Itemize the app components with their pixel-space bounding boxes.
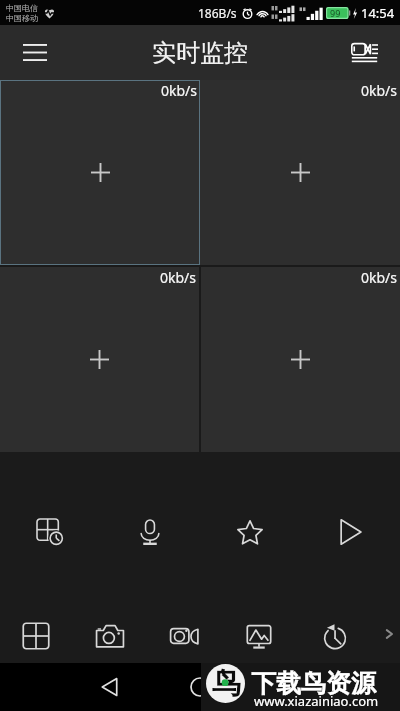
button[interactable]: Video channel <box>0 267 199 452</box>
button[interactable]: Video channel <box>200 80 400 265</box>
button[interactable]: Play <box>324 506 376 558</box>
staticText: 中国移动 <box>6 13 38 23</box>
staticText: 0kb/s <box>161 81 198 100</box>
staticText: 0kb/s <box>361 268 398 287</box>
button[interactable]: Back <box>100 677 119 697</box>
button[interactable]: History <box>310 612 358 660</box>
staticText: 14:54 <box>361 4 395 22</box>
staticText: 0kb/s <box>160 268 197 287</box>
staticText: 186B/s <box>198 5 237 21</box>
staticText: www.xiazainiao.com <box>254 692 379 710</box>
button[interactable]: Video channel <box>0 80 200 265</box>
button[interactable]: Split screen <box>12 612 60 660</box>
staticText: 实时监控 <box>152 38 248 68</box>
staticText: 下载鸟资源 <box>251 668 376 699</box>
button[interactable]: Favorite <box>224 506 276 558</box>
button[interactable]: Snapshot <box>86 612 134 660</box>
button[interactable]: Menu <box>0 25 70 80</box>
button[interactable]: Video channel <box>201 267 400 452</box>
button[interactable]: Microphone <box>124 506 176 558</box>
staticText: 0kb/s <box>361 81 398 100</box>
button[interactable]: Playback <box>24 506 76 558</box>
button[interactable]: Device list <box>328 25 400 80</box>
button[interactable]: Record <box>161 612 209 660</box>
staticText: 鸟 <box>212 665 241 702</box>
button[interactable]: Image <box>235 612 283 660</box>
button[interactable]: Home <box>190 677 210 697</box>
staticText: 99 <box>330 7 341 19</box>
staticText: 中国电信 <box>6 3 38 13</box>
